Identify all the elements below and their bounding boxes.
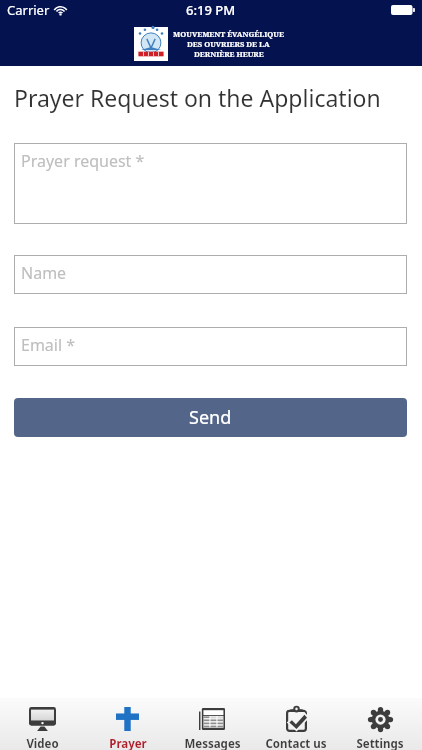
button[interactable]: Prayer request *: [14, 143, 407, 224]
staticText: MOUVEMENT ÉVANGÉLIQUE: [173, 29, 284, 39]
staticText: Settings: [356, 736, 404, 750]
button[interactable]: Prayer: [85, 698, 170, 750]
button[interactable]: Email *: [14, 327, 407, 366]
staticText: Prayer: [109, 736, 147, 750]
button[interactable]: Name: [14, 255, 407, 294]
button[interactable]: Video: [0, 698, 85, 750]
staticText: Messages: [184, 736, 241, 750]
staticText: Prayer request *: [21, 150, 145, 172]
staticText: Contact us: [265, 736, 327, 750]
button[interactable]: Messages: [170, 698, 254, 750]
staticText: DERNIÈRE HEURE: [194, 49, 264, 59]
staticText: Send: [189, 405, 232, 430]
staticText: Email *: [21, 334, 76, 356]
staticText: Video: [26, 736, 59, 750]
button[interactable]: Send: [14, 398, 407, 437]
button[interactable]: MOUVEMENT ÉVANGÉLIQUE: [134, 27, 284, 61]
staticText: Carrier: [7, 1, 50, 19]
button[interactable]: Contact us: [254, 698, 338, 750]
other: Battery full: [391, 5, 415, 15]
staticText: 6:19 PM: [186, 1, 236, 19]
staticText: DES OUVRIERS DE LA: [187, 39, 270, 49]
staticText: Name: [21, 262, 67, 284]
staticText: Prayer Request on the Application: [14, 82, 381, 113]
button[interactable]: Settings: [338, 698, 422, 750]
